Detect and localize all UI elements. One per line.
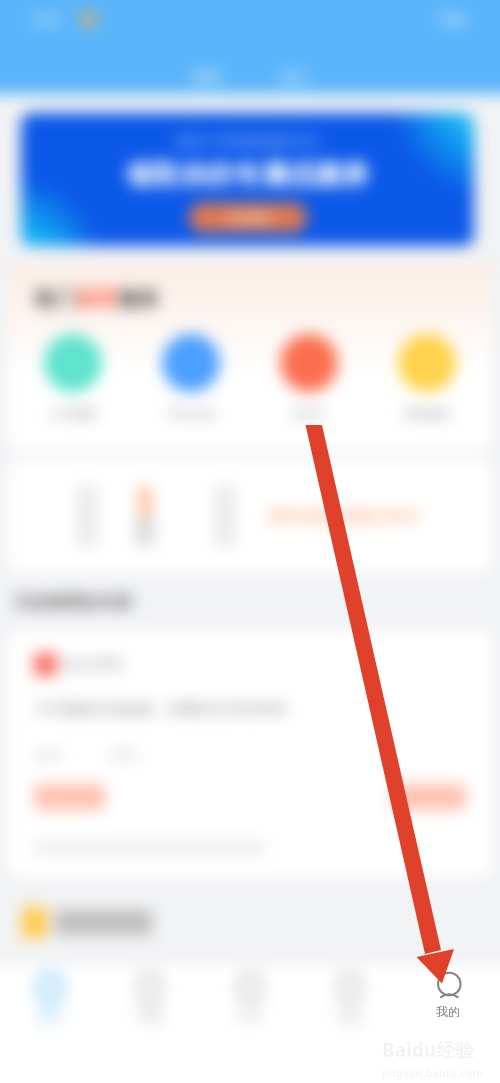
button[interactable]: 为你推荐的内容 xyxy=(13,592,132,613)
button[interactable]: 生活 xyxy=(200,965,300,1023)
button[interactable]: 关注 xyxy=(250,63,336,92)
button[interactable]: 理财 xyxy=(100,965,200,1023)
button[interactable]: 消息 xyxy=(300,965,400,1023)
staticText: 理财 xyxy=(137,1007,163,1023)
staticText: 首页 xyxy=(37,1007,63,1023)
button[interactable]: 立即领取 xyxy=(189,203,307,232)
staticText: 生活缴费 xyxy=(49,406,97,421)
button[interactable]: 我的 xyxy=(405,962,495,1024)
staticText: 新用户专享福利限时开启 xyxy=(176,133,319,149)
staticText: Baidu经验 xyxy=(382,1037,475,1063)
staticText: 热门 xyxy=(34,286,76,312)
staticText: 76% xyxy=(438,10,466,29)
staticText: 今日最新活动速递 xyxy=(34,700,154,719)
staticText: 立即领取 xyxy=(224,210,272,225)
staticText: 热点资讯 xyxy=(64,655,124,674)
staticText: 多重好礼等你来拿 xyxy=(167,700,287,719)
button[interactable]: 推荐 xyxy=(164,63,250,92)
button[interactable]: 限时抢购优惠活动中 xyxy=(269,506,422,527)
staticText: 我的 xyxy=(436,1004,460,1019)
staticText: 9:41 xyxy=(34,10,62,29)
staticText: 服务 xyxy=(118,286,160,312)
button[interactable]: 新用户专享福利限时开启 xyxy=(21,113,474,246)
button[interactable] xyxy=(22,907,152,938)
staticText: 关注 xyxy=(278,68,308,87)
button[interactable]: 信用卡 xyxy=(250,334,368,421)
staticText: 领取你的专属优惠券 xyxy=(126,158,369,192)
staticText: jingyan.baidu.com xyxy=(382,1065,484,1080)
staticText: 理财服务 xyxy=(403,406,451,421)
staticText: 限时抢购优惠活动中 xyxy=(269,506,422,527)
button[interactable] xyxy=(128,480,162,552)
staticText: 为你推荐的内容 xyxy=(13,592,132,613)
button[interactable] xyxy=(208,480,242,552)
staticText: 推荐 xyxy=(192,68,222,87)
staticText: 推荐 xyxy=(76,286,118,312)
button[interactable]: 首页 xyxy=(0,965,100,1023)
button[interactable]: 手机充值 xyxy=(132,334,250,421)
button[interactable] xyxy=(70,480,104,552)
button[interactable]: 理财服务 xyxy=(368,334,486,421)
button[interactable]: 生活缴费 xyxy=(14,334,132,421)
